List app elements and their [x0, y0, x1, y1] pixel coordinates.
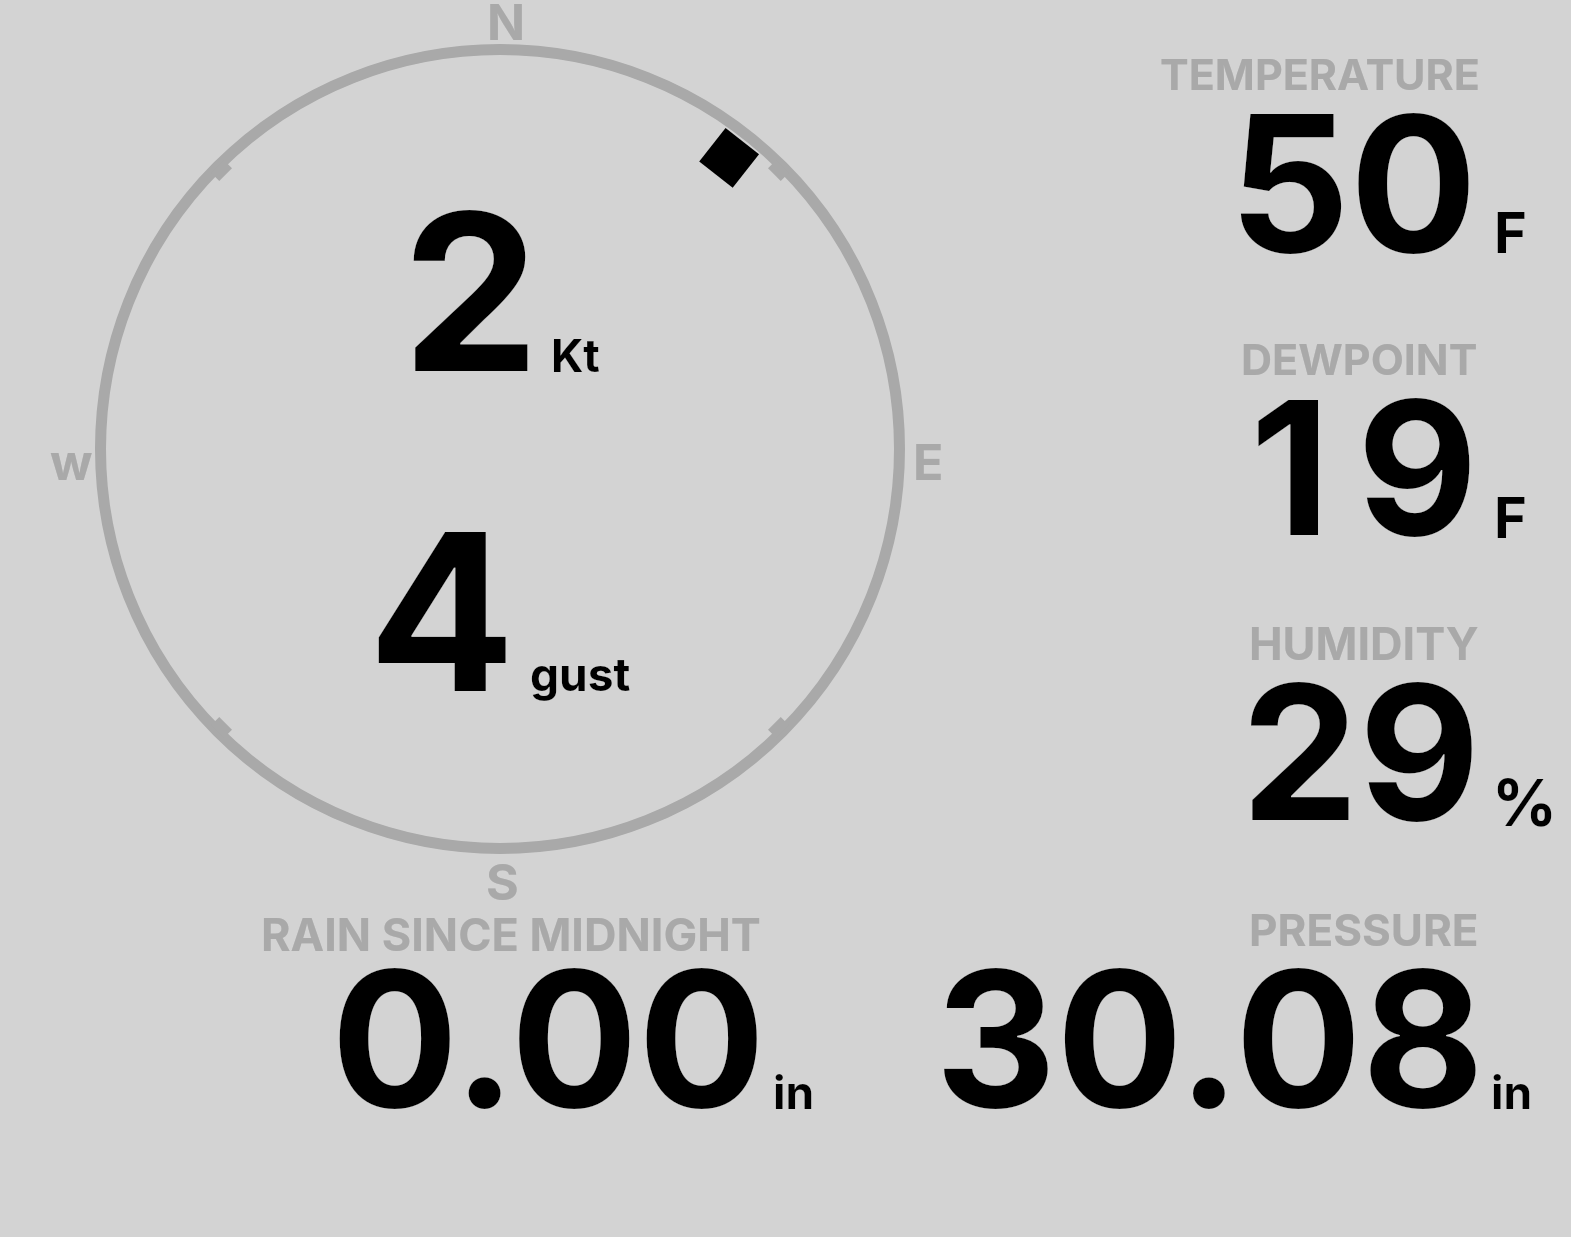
staticText: % — [1492, 764, 1557, 841]
button[interactable]: Rain since midnight 0.00 inches — [250, 900, 830, 1125]
staticText: Kt — [551, 328, 600, 382]
staticText: w — [50, 432, 93, 492]
staticText: RAIN SINCE MIDNIGHT — [261, 907, 761, 961]
staticText: 2 — [402, 160, 540, 424]
button[interactable]: Pressure 30.08 inches — [900, 900, 1560, 1125]
staticText: in — [773, 1064, 815, 1120]
staticText: F — [1494, 199, 1527, 267]
staticText: TEMPERATURE — [1160, 48, 1480, 100]
staticText: HUMIDITY — [1249, 616, 1479, 670]
staticText: F — [1494, 484, 1527, 552]
staticText: 1 — [1250, 355, 1331, 580]
staticText: N — [487, 0, 526, 52]
staticText: 30.08 — [935, 925, 1485, 1152]
staticText: in — [1491, 1064, 1533, 1120]
staticText: PRESSURE — [1249, 903, 1479, 956]
staticText: 0.00 — [331, 924, 766, 1153]
staticText: E — [913, 432, 944, 492]
button[interactable]: Humidity 29 percent — [1150, 600, 1560, 840]
staticText: 9 — [1357, 355, 1478, 580]
button[interactable]: Dewpoint 19 degrees Fahrenheit — [1150, 320, 1560, 555]
button[interactable]: Temperature 50 degrees Fahrenheit — [1150, 30, 1560, 270]
staticText: S — [486, 852, 519, 912]
staticText: 29 — [1241, 639, 1481, 865]
staticText: 50 — [1229, 69, 1478, 298]
staticText: gust — [530, 646, 631, 702]
staticText: 4 — [368, 480, 516, 744]
staticText: DEWPOINT — [1241, 333, 1478, 385]
button[interactable]: Wind 2 knots, gusting 4 knots — [40, 0, 960, 900]
